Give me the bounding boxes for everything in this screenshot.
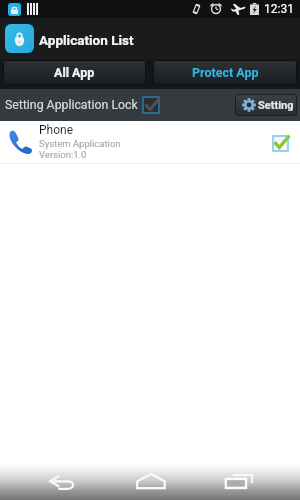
staticText: System Application	[39, 138, 121, 149]
button[interactable]: Setting Application Lock	[5, 97, 159, 113]
button[interactable]: Home	[106, 463, 194, 500]
staticText: Version:1.0	[39, 149, 87, 160]
staticText: Setting Application Lock	[5, 98, 138, 112]
button[interactable]: All App	[3, 60, 146, 85]
staticText: Application List	[39, 32, 134, 48]
staticText: Protect App	[192, 65, 259, 80]
button[interactable]: Setting	[235, 94, 297, 116]
staticText: Phone	[39, 123, 74, 137]
staticText: All App	[54, 65, 95, 80]
button[interactable]: Recent apps	[194, 463, 300, 500]
staticText: 12:31	[264, 2, 294, 16]
staticText: Setting	[258, 99, 294, 112]
button[interactable]: Phone	[0, 121, 300, 164]
button[interactable]: Protect App	[153, 60, 297, 85]
button[interactable]: Back	[0, 463, 106, 500]
